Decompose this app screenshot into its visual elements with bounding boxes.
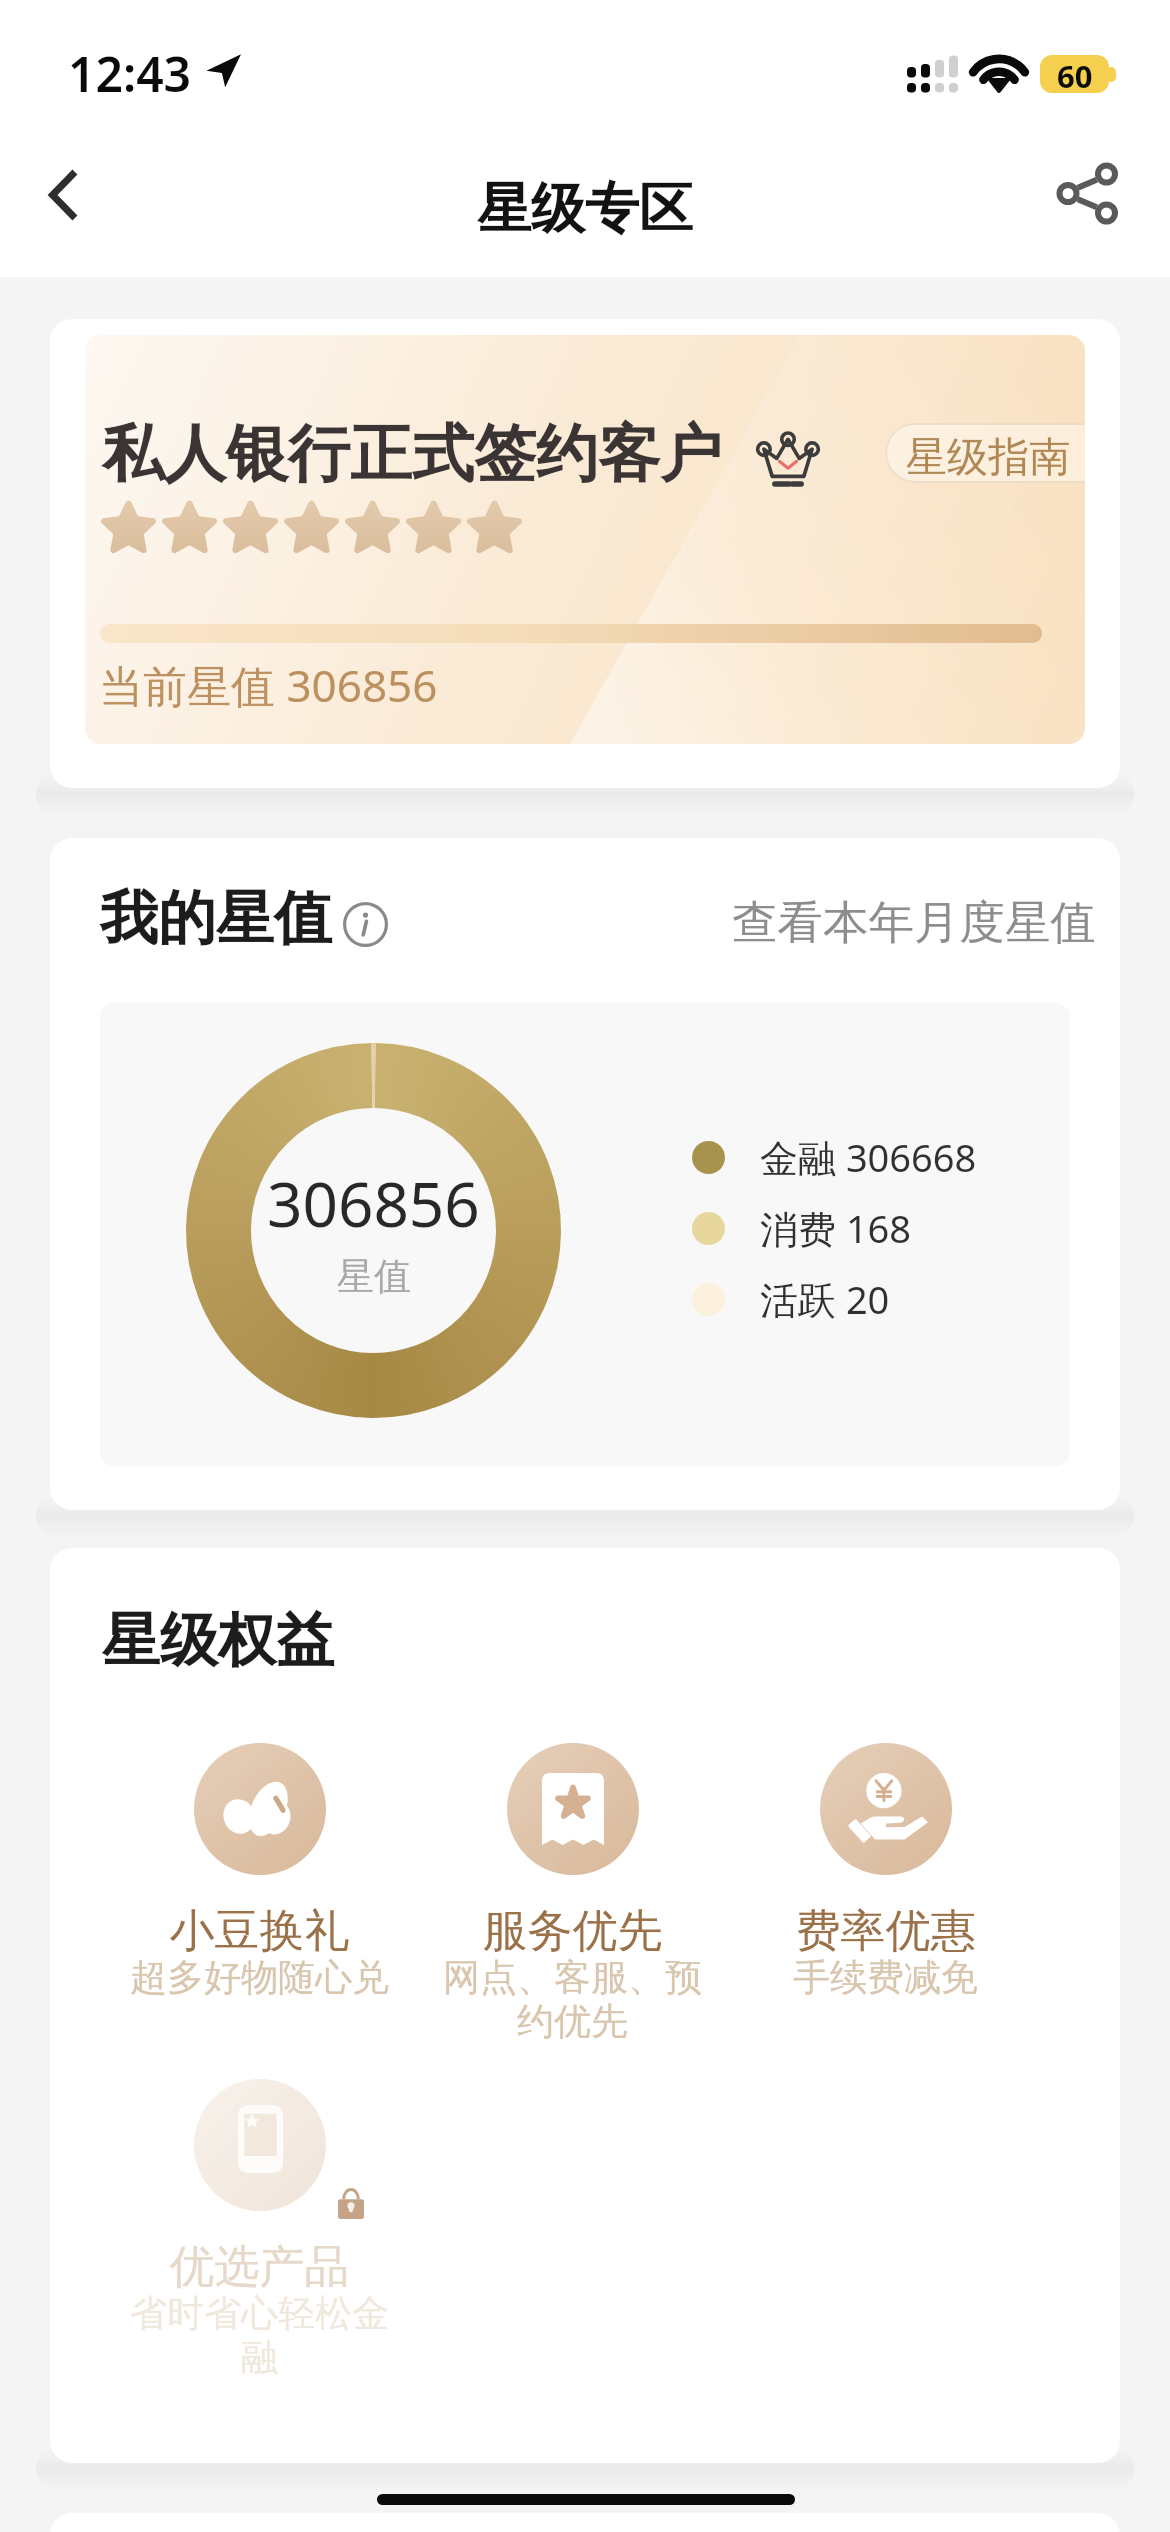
staticText: 金融 306668: [760, 1131, 977, 1183]
staticText: 优选产品: [103, 2239, 416, 2296]
button[interactable]: Back: [7, 140, 117, 250]
button[interactable]: Share: [1034, 140, 1144, 250]
staticText: 手续费减免: [729, 1954, 1042, 2001]
button[interactable]: 小豆换礼: [103, 1743, 416, 2043]
button[interactable]: 费率优惠: [729, 1743, 1042, 2043]
button[interactable]: 星级指南: [885, 423, 1085, 483]
staticText: 当前星值 306856: [99, 655, 438, 715]
button[interactable]: 查看本年月度星值: [732, 894, 1096, 951]
staticText: 12:43: [68, 41, 192, 106]
staticText: 活跃 20: [760, 1273, 890, 1325]
staticText: 我的星值: [100, 882, 332, 955]
staticText: 省时省心轻松金 融: [103, 2290, 416, 2381]
staticText: 小豆换礼: [103, 1903, 416, 1960]
staticText: 私人银行正式签约客户: [102, 415, 722, 493]
staticText: 星级专区: [0, 175, 1170, 243]
button[interactable]: 优选产品: [103, 2079, 416, 2379]
staticText: 超多好物随心兑: [103, 1954, 416, 2001]
staticText: 306856: [267, 1161, 480, 1245]
button[interactable]: 服务优先: [416, 1743, 729, 2043]
staticText: 星值: [337, 1253, 411, 1300]
staticText: 60: [1057, 55, 1093, 93]
staticText: 查看本年月度星值: [732, 894, 1096, 951]
staticText: 网点、客服、预 约优先: [416, 1954, 729, 2045]
button[interactable]: Info: [343, 902, 388, 947]
staticText: 消费 168: [760, 1202, 912, 1254]
staticText: 费率优惠: [729, 1903, 1042, 1960]
staticText: 星级指南: [906, 432, 1070, 483]
staticText: 星级权益: [102, 1604, 334, 1677]
staticText: 服务优先: [416, 1903, 729, 1960]
